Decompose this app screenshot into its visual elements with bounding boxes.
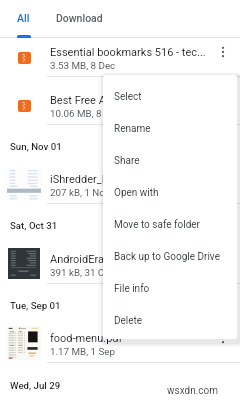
button[interactable] [0, 29, 240, 77]
button[interactable] [0, 315, 240, 363]
button[interactable]: Download [46, 0, 110, 37]
button[interactable]: More options [212, 248, 234, 270]
staticText: 10.06 MB, 8 [50, 108, 102, 119]
button[interactable]: More options [212, 41, 234, 63]
staticText: Sun, Nov 01 [10, 141, 62, 152]
staticText: 391 kB, 31 O [50, 267, 105, 278]
button[interactable]: More options [212, 327, 234, 349]
button[interactable] [0, 77, 240, 125]
button[interactable]: Delete [103, 305, 237, 337]
staticText: All [17, 12, 30, 24]
button[interactable]: All [2, 0, 46, 37]
staticText: Move to safe folder [114, 219, 200, 231]
staticText: iShredder_R [50, 173, 109, 186]
button[interactable]: File info [103, 273, 237, 305]
staticText: Tue, Sep 01 [10, 300, 61, 311]
staticText: food-menu.pdf [50, 332, 123, 345]
button[interactable]: Share [103, 145, 237, 177]
staticText: Select [114, 91, 142, 103]
staticText: Download [56, 12, 103, 24]
staticText: Essential bookmarks 516 - tec... [50, 46, 206, 59]
staticText: AndroidEra [50, 253, 104, 266]
staticText: File info [114, 283, 150, 295]
button[interactable]: Move to safe folder [103, 209, 237, 241]
staticText: Wed, Jul 29 [10, 380, 61, 391]
button[interactable] [0, 236, 240, 284]
staticText: Best Free A [50, 94, 106, 107]
staticText: Share [114, 155, 140, 167]
staticText: 1.17 MB, 1 Sep [50, 346, 115, 357]
staticText: Sat, Oct 31 [10, 220, 58, 231]
staticText: Back up to Google Drive [114, 251, 220, 263]
button[interactable]: Select [103, 81, 237, 113]
button[interactable]: Back up to Google Drive [103, 241, 237, 273]
staticText: 207 kB, 1 No [50, 187, 105, 198]
staticText: wsxdn.com [167, 385, 219, 397]
button[interactable]: Open with [103, 177, 237, 209]
staticText: 3.53 MB, 8 Dec [50, 60, 116, 71]
button[interactable]: Rename [103, 113, 237, 145]
staticText: Open with [114, 187, 159, 199]
staticText: Rename [114, 123, 151, 135]
button[interactable] [0, 156, 240, 204]
staticText: Delete [114, 315, 143, 327]
